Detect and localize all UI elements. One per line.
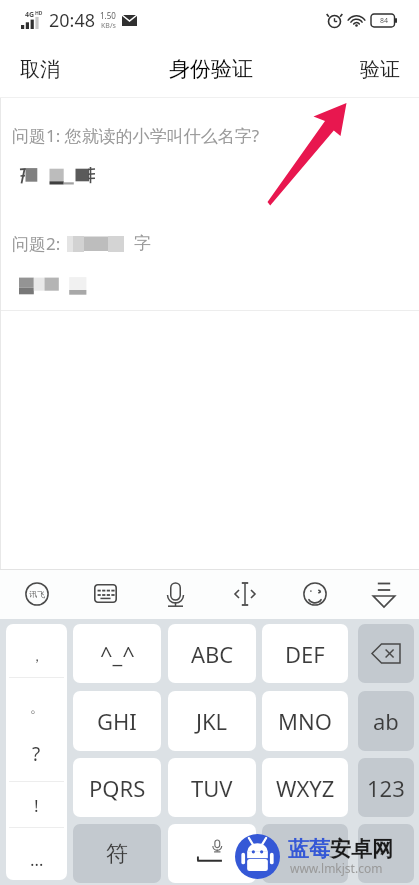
button[interactable]: Hide keyboard — [359, 569, 409, 619]
staticText: www.lmkjst.com — [290, 860, 383, 876]
staticText: KB/s — [101, 21, 116, 31]
button[interactable] — [262, 824, 348, 883]
button[interactable]: 取消 — [0, 45, 80, 94]
button[interactable]: ab — [358, 691, 414, 751]
button[interactable]: TUV — [168, 758, 256, 817]
staticText: 84 — [380, 16, 389, 26]
staticText: TUV — [191, 773, 233, 803]
button[interactable]: WXYZ — [262, 758, 348, 817]
staticText: 安卓网 — [330, 836, 393, 862]
button[interactable] — [358, 824, 414, 883]
button[interactable]: Input method — [11, 569, 63, 619]
button[interactable]: ^_^ — [73, 624, 161, 683]
button[interactable]: 验证 — [340, 45, 419, 94]
staticText: GHI — [97, 706, 137, 736]
button[interactable]: Cursor position — [220, 569, 270, 619]
button[interactable]: 符 — [73, 824, 161, 883]
staticText: ， — [30, 648, 44, 666]
staticText: 字 — [134, 233, 151, 254]
staticText: … — [30, 848, 44, 871]
staticText: 问题2: — [12, 232, 61, 255]
button[interactable]: DEF — [262, 624, 348, 683]
staticText: 取消 — [20, 57, 60, 82]
staticText: 蓝莓 — [288, 836, 330, 862]
staticText: JKL — [196, 706, 228, 736]
staticText: 验证 — [360, 57, 400, 82]
button[interactable]: JKL — [168, 691, 256, 751]
staticText: 符 — [106, 840, 128, 868]
button[interactable]: Emoji — [289, 569, 341, 619]
staticText: 问题1: 您就读的小学叫什么名字? — [12, 124, 260, 147]
staticText: 讯飞 — [29, 589, 45, 599]
staticText: 1.50 — [100, 10, 116, 21]
staticText: 123 — [367, 773, 405, 803]
button[interactable]: GHI — [73, 691, 161, 751]
button[interactable]: Space — [168, 824, 256, 883]
staticText: ? — [32, 741, 41, 765]
staticText: 。 — [30, 699, 44, 717]
button[interactable]: ， — [6, 624, 67, 880]
staticText: PQRS — [89, 773, 146, 803]
staticText: 20:48 — [49, 8, 96, 33]
staticText: ABC — [191, 639, 234, 669]
staticText: DEF — [285, 639, 325, 669]
staticText: WXYZ — [276, 773, 335, 803]
staticText: 4G — [25, 10, 35, 20]
button[interactable]: PQRS — [73, 758, 161, 817]
staticText: HD — [35, 10, 43, 17]
staticText: MNO — [278, 706, 332, 736]
button[interactable]: ABC — [168, 624, 256, 683]
staticText: 身份验证 — [169, 56, 253, 82]
staticText: ! — [34, 794, 39, 817]
button[interactable]: Backspace — [358, 624, 414, 683]
staticText: ab — [373, 706, 399, 736]
button[interactable]: 123 — [358, 758, 414, 817]
staticText: ^_^ — [100, 639, 135, 669]
button[interactable]: MNO — [262, 691, 348, 751]
button[interactable]: Voice input — [153, 569, 198, 619]
button[interactable]: Keyboard layout — [80, 569, 131, 619]
